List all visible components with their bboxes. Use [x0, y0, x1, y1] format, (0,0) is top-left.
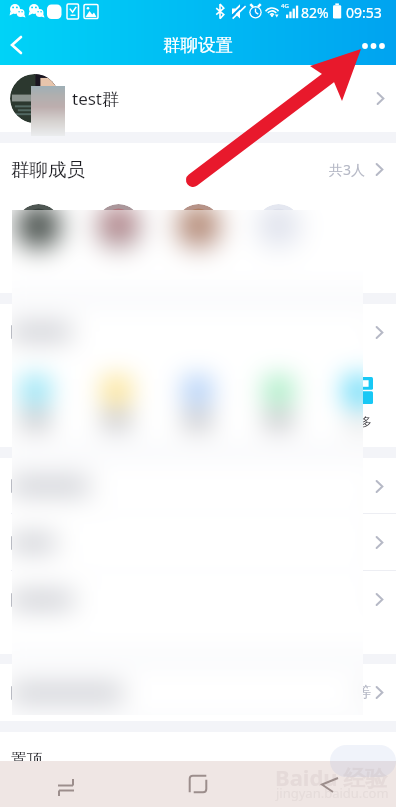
button[interactable] [0, 304, 396, 360]
button[interactable] [0, 458, 396, 514]
staticText: 共3人 [329, 160, 366, 179]
button[interactable] [0, 195, 396, 293]
button[interactable] [0, 571, 396, 654]
staticText: 群聊成员 [11, 158, 85, 181]
staticText: 群聊成员 [11, 158, 85, 181]
button[interactable]: 置顶 [0, 732, 396, 788]
button[interactable]: test群 [0, 65, 396, 132]
staticText: 4G [281, 2, 289, 10]
button[interactable]: 群聊成员 [0, 143, 396, 195]
button[interactable] [0, 195, 396, 293]
button[interactable]: 等 [0, 664, 396, 721]
button[interactable]: 等 [0, 664, 396, 721]
staticText: 共3人 [329, 160, 366, 179]
staticText: 更多 [348, 414, 372, 429]
button[interactable] [0, 458, 396, 514]
button[interactable]: test群 [0, 65, 396, 132]
button[interactable] [0, 304, 396, 360]
button[interactable] [0, 304, 396, 360]
staticText: 等 [356, 683, 371, 702]
staticText: 共3人 [329, 160, 366, 179]
staticText: Baidu 经验 [275, 762, 388, 792]
button[interactable]: Back [0, 25, 40, 65]
staticText: 群聊成员 [11, 158, 85, 181]
button[interactable] [0, 571, 396, 654]
button[interactable] [0, 195, 396, 293]
staticText: 共3人 [329, 160, 366, 179]
staticText: 置顶 [11, 750, 43, 770]
staticText: 置顶 [11, 750, 43, 770]
staticText: 置顶 [11, 750, 43, 770]
staticText: 等 [356, 683, 371, 702]
staticText: test群 [72, 87, 120, 110]
staticText: 更多 [348, 414, 372, 429]
button[interactable]: 置顶 [0, 732, 396, 788]
staticText: 等 [356, 683, 371, 702]
button[interactable]: test群 [0, 65, 396, 132]
button[interactable] [0, 458, 396, 514]
button[interactable]: Home [132, 761, 264, 807]
button[interactable] [0, 571, 396, 654]
staticText: 等 [356, 683, 371, 702]
button[interactable]: test群 [0, 65, 396, 132]
button[interactable] [0, 195, 396, 293]
button[interactable]: 置顶 [0, 732, 396, 788]
staticText: test群 [72, 87, 120, 110]
button[interactable] [0, 458, 396, 514]
button[interactable]: 等 [0, 664, 396, 721]
button[interactable]: 置顶 [0, 732, 396, 788]
staticText: 置顶 [11, 750, 43, 770]
staticText: test群 [72, 87, 120, 110]
button[interactable]: 群聊成员 [0, 143, 396, 195]
button[interactable] [0, 304, 396, 360]
staticText: 更多 [348, 414, 372, 429]
button[interactable]: 群聊成员 [0, 143, 396, 195]
button[interactable] [0, 514, 396, 571]
staticText: 更多 [348, 414, 372, 429]
button[interactable] [0, 514, 396, 571]
button[interactable]: 群聊成员 [0, 143, 396, 195]
button[interactable]: 群聊成员 [0, 143, 396, 195]
staticText: test群 [72, 87, 120, 110]
button[interactable] [0, 514, 396, 571]
staticText: 09:53 [346, 3, 382, 22]
staticText: 置顶 [11, 750, 43, 770]
staticText: 群聊成员 [11, 158, 85, 181]
button[interactable]: 等 [0, 664, 396, 721]
staticText: 群聊成员 [11, 158, 85, 181]
button[interactable] [0, 458, 396, 514]
button[interactable] [0, 571, 396, 654]
button[interactable] [0, 195, 396, 293]
staticText: 群聊设置 [163, 34, 233, 56]
button[interactable] [0, 304, 396, 360]
staticText: 82% [301, 3, 329, 22]
button[interactable]: Back [264, 761, 396, 807]
button[interactable]: test群 [0, 65, 396, 132]
button[interactable] [0, 514, 396, 571]
staticText: 等 [356, 683, 371, 702]
button[interactable] [0, 514, 396, 571]
button[interactable]: 等 [0, 664, 396, 721]
button[interactable]: 置顶 [0, 732, 396, 788]
button[interactable]: More options [352, 25, 396, 65]
staticText: test群 [72, 87, 120, 110]
button[interactable] [0, 571, 396, 654]
staticText: jingyan.baidu.com [276, 784, 389, 802]
staticText: 更多 [348, 414, 372, 429]
staticText: 共3人 [329, 160, 366, 179]
button[interactable]: Recent apps [0, 761, 132, 807]
